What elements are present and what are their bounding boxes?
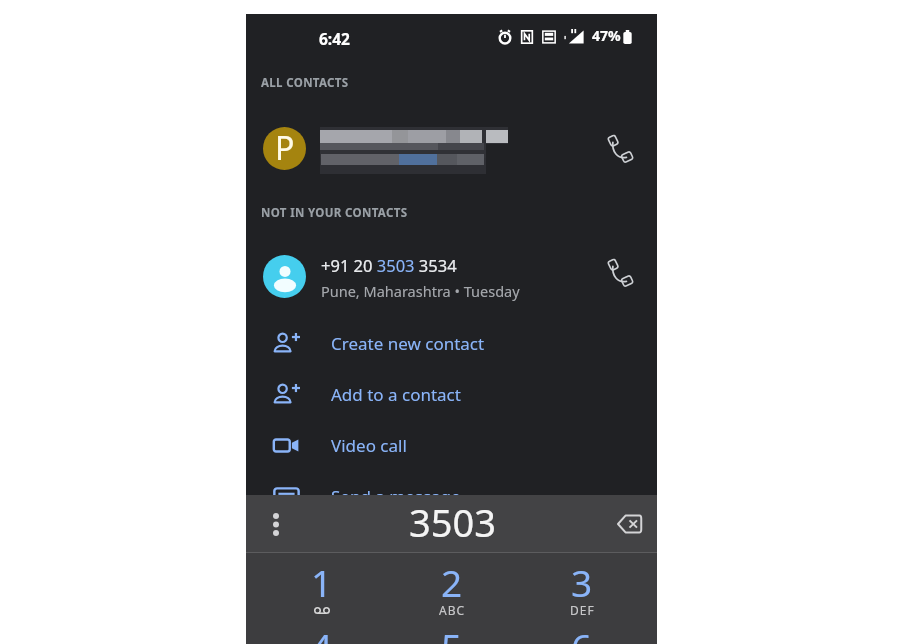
button[interactable]: 2: [387, 553, 517, 617]
button[interactable]: Call: [606, 135, 634, 163]
button[interactable]: 5: [387, 617, 517, 644]
button[interactable]: Video call: [246, 420, 657, 471]
staticText: DEF: [570, 602, 595, 618]
staticText: Send a message: [331, 485, 461, 508]
staticText: P: [275, 127, 295, 169]
staticText: 3: [571, 557, 593, 607]
button[interactable]: Send a message: [246, 471, 657, 522]
button[interactable]: Create new contact: [246, 318, 657, 369]
staticText: 2: [441, 557, 463, 607]
button[interactable]: P: [246, 113, 657, 187]
button[interactable]: 4: [256, 617, 387, 644]
staticText: +91 20 3503 3534: [321, 254, 457, 276]
staticText: Add to a contact: [331, 383, 461, 406]
staticText: ALL CONTACTS: [261, 75, 349, 91]
staticText: Video call: [331, 434, 407, 457]
button[interactable]: Add to a contact: [246, 369, 657, 420]
staticText: 3503: [409, 496, 496, 548]
button[interactable]: Call: [606, 259, 634, 287]
button[interactable]: More options: [252, 500, 300, 548]
button[interactable]: 6: [517, 617, 647, 644]
staticText: NOT IN YOUR CONTACTS: [261, 205, 408, 221]
staticText: 6: [571, 621, 593, 644]
button[interactable]: +91 20 3503 3534: [246, 241, 657, 305]
staticText: Create new contact: [331, 332, 485, 355]
staticText: 47%: [592, 26, 621, 45]
button[interactable]: Backspace: [607, 502, 651, 546]
staticText: ABC: [439, 602, 466, 618]
button[interactable]: 1: [256, 553, 387, 617]
staticText: 5: [441, 621, 463, 644]
staticText: 1: [311, 557, 333, 607]
staticText: 4: [311, 621, 333, 644]
staticText: 6:42: [319, 28, 350, 49]
button[interactable]: 3: [517, 553, 647, 617]
staticText: Pune, Maharashtra • Tuesday: [321, 281, 520, 301]
